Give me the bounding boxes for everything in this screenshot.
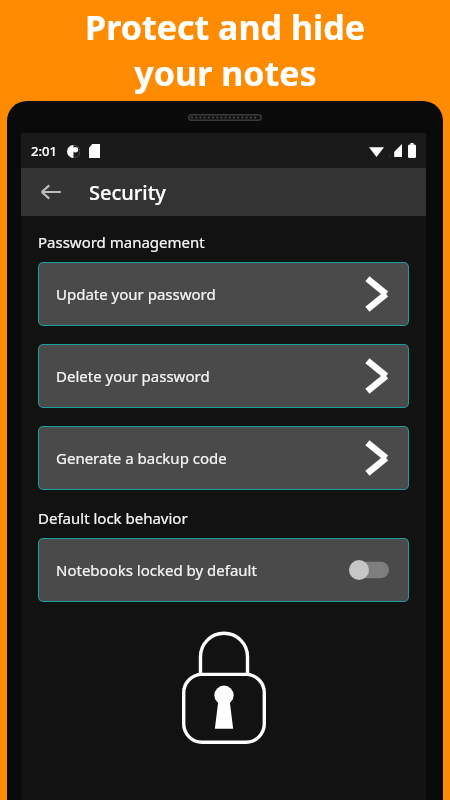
button[interactable]: Update your password: [38, 262, 409, 326]
button[interactable]: Delete your password: [38, 344, 409, 408]
button[interactable]: Notebooks locked by default: [38, 538, 409, 602]
staticText: Default lock behavior: [38, 508, 188, 528]
staticText: your notes: [134, 50, 317, 96]
staticText: Delete your password: [56, 366, 210, 386]
staticText: Security: [89, 179, 166, 206]
button[interactable]: Back: [31, 172, 71, 212]
staticText: Password management: [38, 232, 205, 252]
staticText: Update your password: [56, 284, 216, 304]
staticText: 2:01: [31, 142, 57, 160]
staticText: Protect and hide: [85, 4, 365, 50]
staticText: Notebooks locked by default: [56, 560, 257, 580]
staticText: Generate a backup code: [56, 448, 227, 468]
button[interactable]: Generate a backup code: [38, 426, 409, 490]
